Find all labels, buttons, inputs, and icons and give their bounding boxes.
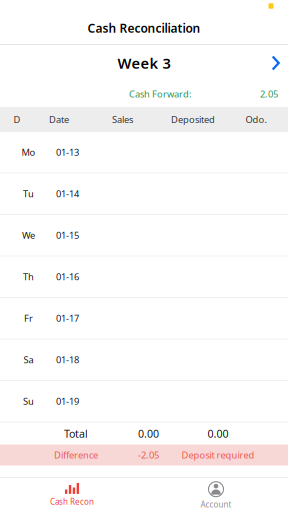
staticText: Deposit required [181, 449, 254, 461]
staticText: Difference [54, 449, 98, 461]
staticText: 0.00 [207, 426, 228, 441]
staticText: Sales [112, 113, 133, 126]
staticText: Total [64, 426, 88, 441]
staticText [17, 440, 23, 470]
staticText: -2.05 [138, 449, 159, 461]
button[interactable]: Cash Recon [0, 478, 144, 512]
staticText: Odo. [245, 113, 267, 126]
staticText [266, 440, 272, 470]
staticText: 2.05 [260, 88, 278, 100]
staticText: Su [23, 395, 34, 407]
staticText: 01-13 [56, 146, 79, 158]
staticText: Cash Recon [50, 496, 94, 507]
staticText [32, 79, 38, 109]
staticText: 01-18 [56, 354, 79, 366]
staticText: 0.00 [138, 426, 159, 441]
staticText: Mo [21, 146, 35, 158]
staticText: Th [23, 271, 34, 283]
staticText: Fr [24, 312, 33, 324]
staticText: 01-14 [56, 188, 79, 200]
button[interactable]: Next week [263, 50, 288, 76]
staticText: Account [200, 499, 231, 510]
staticText: Cash Forward: [129, 88, 192, 100]
staticText: 01-16 [56, 271, 79, 283]
staticText: Deposited [171, 113, 215, 126]
staticText: Sa [23, 354, 33, 366]
staticText: D [13, 113, 20, 126]
staticText: Week 3 [117, 53, 170, 73]
staticText: Date [49, 113, 69, 126]
staticText: 01-15 [56, 229, 79, 241]
staticText [266, 418, 272, 448]
staticText: 01-17 [56, 312, 79, 324]
staticText: Cash Reconciliation [87, 20, 200, 36]
staticText [17, 418, 23, 448]
button[interactable]: Account [144, 478, 288, 512]
staticText: We [22, 229, 35, 241]
staticText: Tu [23, 188, 34, 200]
staticText: 01-19 [56, 395, 79, 407]
